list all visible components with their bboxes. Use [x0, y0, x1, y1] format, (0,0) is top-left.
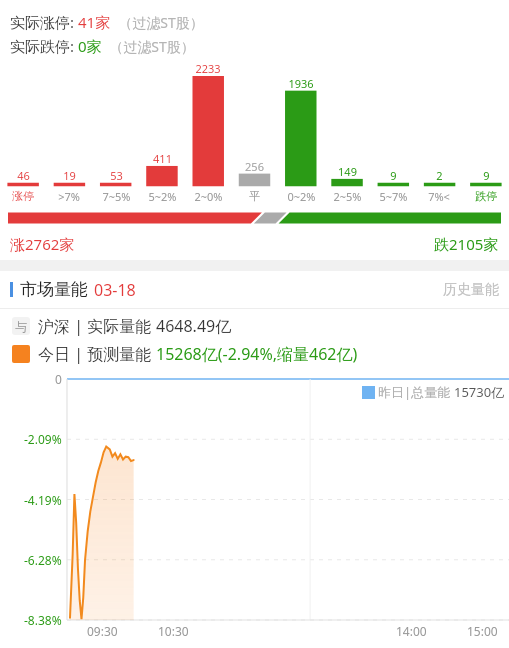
staticText: 09:30: [87, 623, 118, 639]
staticText: 46: [17, 168, 30, 183]
staticText: 2~5%: [333, 189, 362, 204]
staticText: 跌2105家: [434, 234, 499, 254]
staticText: 5~7%: [379, 189, 408, 204]
staticText: 9: [483, 168, 490, 183]
staticText: 41家: [78, 12, 111, 32]
staticText: 今日 | 预测量能: [38, 343, 156, 365]
staticText: 15:00: [467, 623, 498, 639]
button[interactable]: 实际涨停:: [0, 8, 509, 34]
staticText: 与: [15, 319, 27, 334]
staticText: -8.38%: [24, 612, 62, 628]
staticText: >7%: [58, 189, 80, 204]
staticText: 2233: [195, 61, 221, 76]
button[interactable]: 0: [0, 367, 509, 648]
staticText: 跌停: [475, 189, 497, 203]
staticText: 2~0%: [194, 189, 223, 204]
staticText: 沪深 | 实际量能: [38, 315, 156, 337]
other: 预测量能标记: [12, 345, 30, 363]
staticText: 0~2%: [287, 189, 316, 204]
button[interactable]: [8, 208, 501, 228]
staticText: 5~2%: [148, 189, 177, 204]
staticText: 0: [55, 371, 62, 387]
staticText: 53: [110, 168, 123, 183]
button[interactable]: 市场量能: [0, 271, 509, 308]
staticText: 2: [436, 168, 443, 183]
staticText: 昨日|总量能: [378, 383, 454, 401]
staticText: 411: [153, 151, 172, 166]
staticText: 10:30: [158, 623, 189, 639]
staticText: 256: [245, 159, 264, 174]
staticText: 0家: [78, 36, 102, 56]
staticText: 平: [249, 189, 260, 203]
staticText: -4.19%: [24, 492, 62, 508]
staticText: 03-18: [94, 279, 136, 301]
staticText: 涨停: [12, 189, 34, 203]
staticText: 4648.49亿: [156, 315, 232, 337]
staticText: 14:00: [396, 623, 427, 639]
staticText: 7%<: [428, 189, 450, 204]
staticText: 历史量能: [443, 281, 499, 299]
staticText: 19: [63, 168, 76, 183]
staticText: （过滤ST股）: [102, 37, 195, 56]
button[interactable]: 46: [0, 58, 509, 208]
staticText: 7~5%: [102, 189, 131, 204]
staticText: 15730亿: [454, 383, 505, 401]
staticText: （过滤ST股）: [111, 13, 204, 32]
button[interactable]: 昨日总量能标记: [362, 383, 505, 401]
other: 实际量能标记: [12, 317, 30, 335]
button[interactable]: 实际跌停:: [0, 34, 509, 58]
button[interactable]: 实际量能标记: [0, 309, 509, 339]
staticText: 涨2762家: [10, 234, 75, 254]
staticText: 15268亿(-2.94%,缩量462亿): [156, 343, 358, 365]
button[interactable]: 预测量能标记: [0, 339, 509, 367]
staticText: 实际涨停:: [10, 12, 78, 32]
staticText: 1936: [288, 76, 314, 91]
staticText: 149: [338, 164, 357, 179]
staticText: 9: [390, 168, 397, 183]
staticText: -6.28%: [24, 552, 62, 568]
staticText: -2.09%: [24, 431, 62, 447]
staticText: 实际跌停:: [10, 36, 78, 56]
staticText: 市场量能: [20, 279, 88, 300]
